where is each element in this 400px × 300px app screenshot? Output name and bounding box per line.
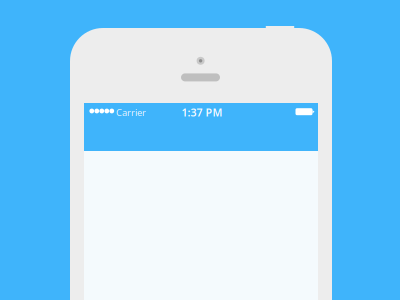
staticText: 1:37 PM — [181, 105, 222, 119]
staticText: Carrier — [116, 106, 146, 119]
